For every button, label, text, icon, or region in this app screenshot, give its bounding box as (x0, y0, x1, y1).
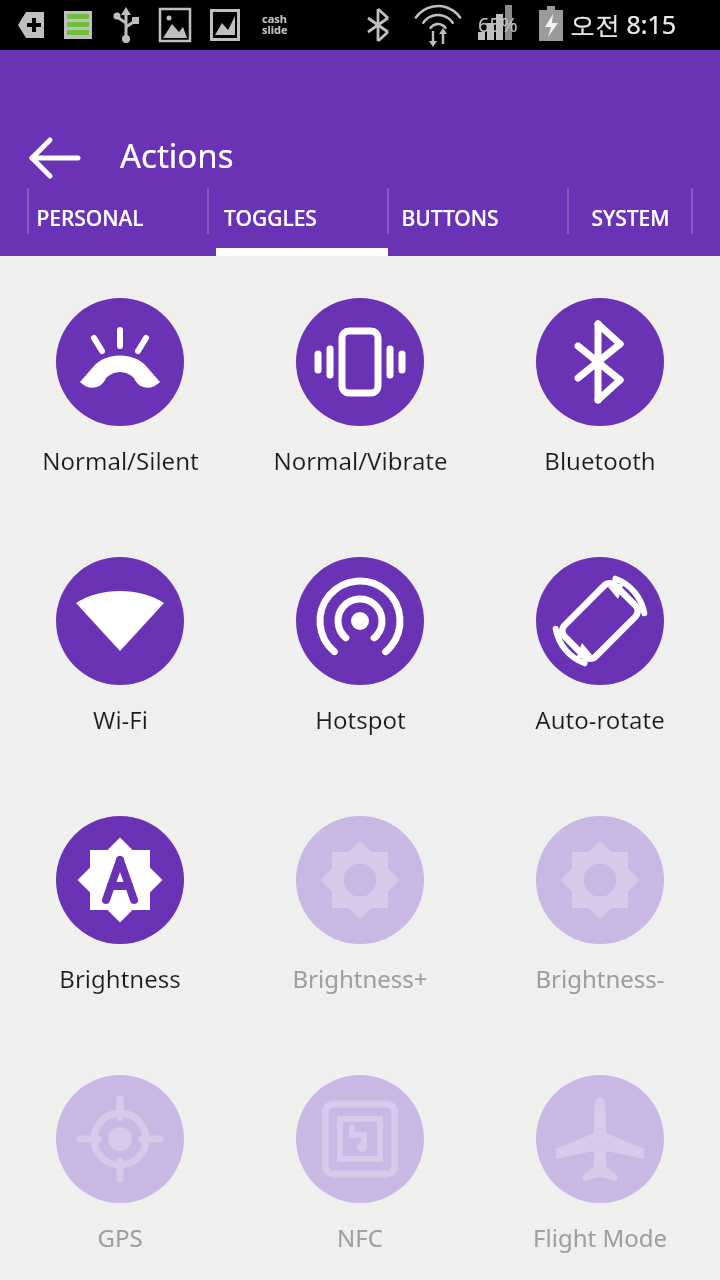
button[interactable]: Brightness- (480, 816, 720, 995)
staticText: Brightness (59, 962, 181, 995)
button[interactable]: PERSONAL (0, 180, 180, 256)
staticText: 오전 8:15 (570, 7, 677, 41)
button[interactable]: Brightness+ (240, 816, 480, 995)
staticText: PERSONAL (36, 204, 144, 233)
staticText: 65% (478, 11, 518, 38)
staticText: Normal/Vibrate (273, 444, 448, 477)
button[interactable]: Brightness (0, 816, 240, 995)
staticText: BUTTONS (401, 204, 499, 233)
staticText: cash slide (262, 11, 288, 38)
button[interactable]: SYSTEM (540, 180, 720, 256)
staticText: Hotspot (315, 703, 406, 736)
button[interactable]: NFC (240, 1075, 480, 1254)
button[interactable]: Bluetooth (480, 298, 720, 477)
staticText: GPS (97, 1221, 143, 1254)
staticText: TOGGLES (224, 204, 317, 233)
staticText: SYSTEM (591, 204, 670, 233)
button[interactable]: Wi-Fi (0, 557, 240, 736)
staticText: Wi-Fi (93, 703, 148, 736)
button[interactable]: Auto-rotate (480, 557, 720, 736)
staticText: Brightness+ (292, 962, 428, 995)
button[interactable]: Normal/Silent (0, 298, 240, 477)
staticText: Actions (120, 133, 234, 178)
button[interactable]: Flight Mode (480, 1075, 720, 1254)
button[interactable]: Back (24, 126, 88, 190)
button[interactable]: Hotspot (240, 557, 480, 736)
staticText: Flight Mode (533, 1221, 667, 1254)
staticText: NFC (337, 1221, 383, 1254)
button[interactable]: GPS (0, 1075, 240, 1254)
staticText: Bluetooth (544, 444, 656, 477)
staticText: Brightness- (535, 962, 665, 995)
staticText: Auto-rotate (535, 703, 665, 736)
staticText: Normal/Silent (42, 444, 199, 477)
button[interactable]: BUTTONS (360, 180, 540, 256)
button[interactable]: TOGGLES (180, 180, 360, 256)
button[interactable]: Normal/Vibrate (240, 298, 480, 477)
